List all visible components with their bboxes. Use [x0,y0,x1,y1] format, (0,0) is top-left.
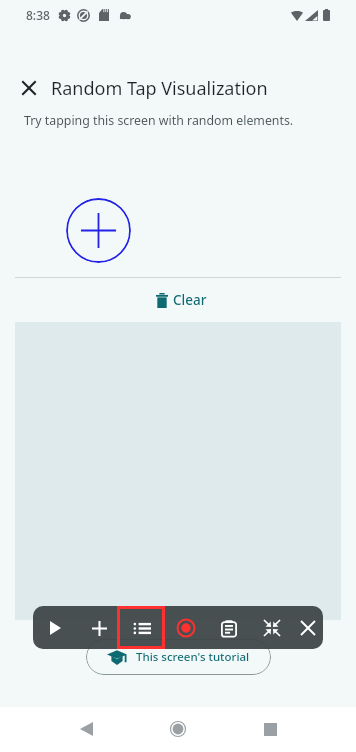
button[interactable]: Clear [150,288,213,312]
button[interactable]: Record [172,614,200,642]
button[interactable]: List [117,606,165,649]
staticText: Random Tap Visualization [51,76,268,101]
staticText: 8:38 [26,7,50,23]
button[interactable]: Collapse [258,614,286,642]
button[interactable]: Back [64,707,108,751]
button[interactable]: Add element [66,198,131,263]
button[interactable]: Add [85,614,113,642]
staticText: Try tapping this screen with random elem… [24,112,294,129]
button[interactable]: Close [17,76,41,100]
staticText: This screen's tutorial [136,649,250,665]
staticText: Clear [173,291,207,309]
button[interactable]: List view [128,614,156,642]
button[interactable]: Close [294,614,322,642]
button[interactable]: Recents [248,707,292,751]
button[interactable]: Clipboard [215,614,243,642]
button[interactable]: This screen's tutorial [86,639,271,675]
button[interactable]: Home [156,707,200,751]
button[interactable]: Play [41,614,69,642]
